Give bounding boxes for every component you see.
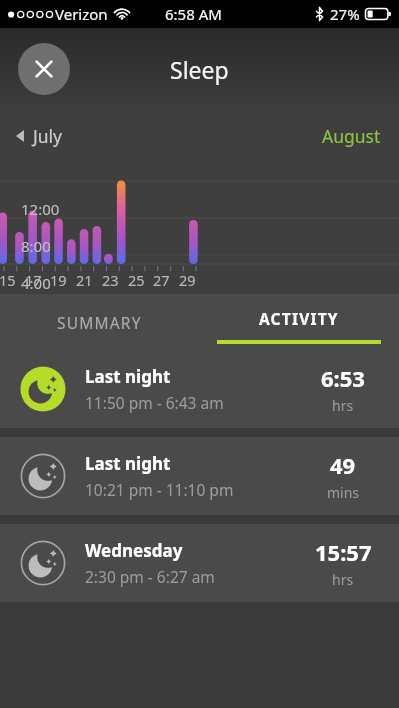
button[interactable]: August — [322, 124, 381, 148]
staticText: 27 — [153, 270, 170, 290]
staticText: mins — [327, 483, 360, 502]
staticText: 6:58 AM — [165, 4, 222, 24]
staticText: Wednesday — [85, 539, 183, 562]
staticText: 2:30 pm - 6:27 am — [85, 566, 215, 587]
button[interactable]: July — [16, 124, 63, 148]
staticText: SUMMARY — [57, 312, 142, 333]
button[interactable]: Close — [18, 43, 70, 95]
button[interactable]: Last night — [0, 350, 399, 428]
staticText: 15:57 — [315, 537, 372, 567]
staticText: Verizon — [55, 4, 108, 24]
staticText: 10:21 pm - 11:10 pm — [85, 479, 234, 500]
staticText: ACTIVITY — [259, 308, 339, 329]
staticText: 21 — [76, 270, 93, 290]
staticText: 29 — [179, 270, 196, 290]
button[interactable]: SUMMARY — [0, 294, 199, 350]
staticText: hrs — [332, 570, 354, 589]
staticText: 23 — [102, 270, 119, 290]
staticText: Last night — [85, 452, 171, 475]
staticText: 11:50 pm - 6:43 am — [85, 392, 224, 413]
staticText: August — [322, 124, 381, 148]
staticText: 27% — [330, 4, 360, 24]
staticText: hrs — [332, 396, 354, 415]
staticText: 25 — [128, 270, 145, 290]
staticText: 4:00 — [21, 273, 51, 293]
staticText: 49 — [330, 450, 356, 480]
staticText: 17 — [25, 270, 42, 290]
staticText: 19 — [50, 270, 67, 290]
staticText: July — [33, 124, 63, 148]
button[interactable]: Wednesday — [0, 524, 399, 602]
staticText: 6:53 — [321, 363, 365, 393]
button[interactable]: Last night — [0, 437, 399, 515]
button[interactable]: ACTIVITY — [199, 294, 399, 350]
staticText: Sleep — [170, 54, 229, 85]
staticText: 12:00 — [21, 199, 60, 219]
staticText: 15 — [0, 270, 16, 290]
staticText: 8:00 — [21, 236, 51, 256]
staticText: Last night — [85, 365, 171, 388]
